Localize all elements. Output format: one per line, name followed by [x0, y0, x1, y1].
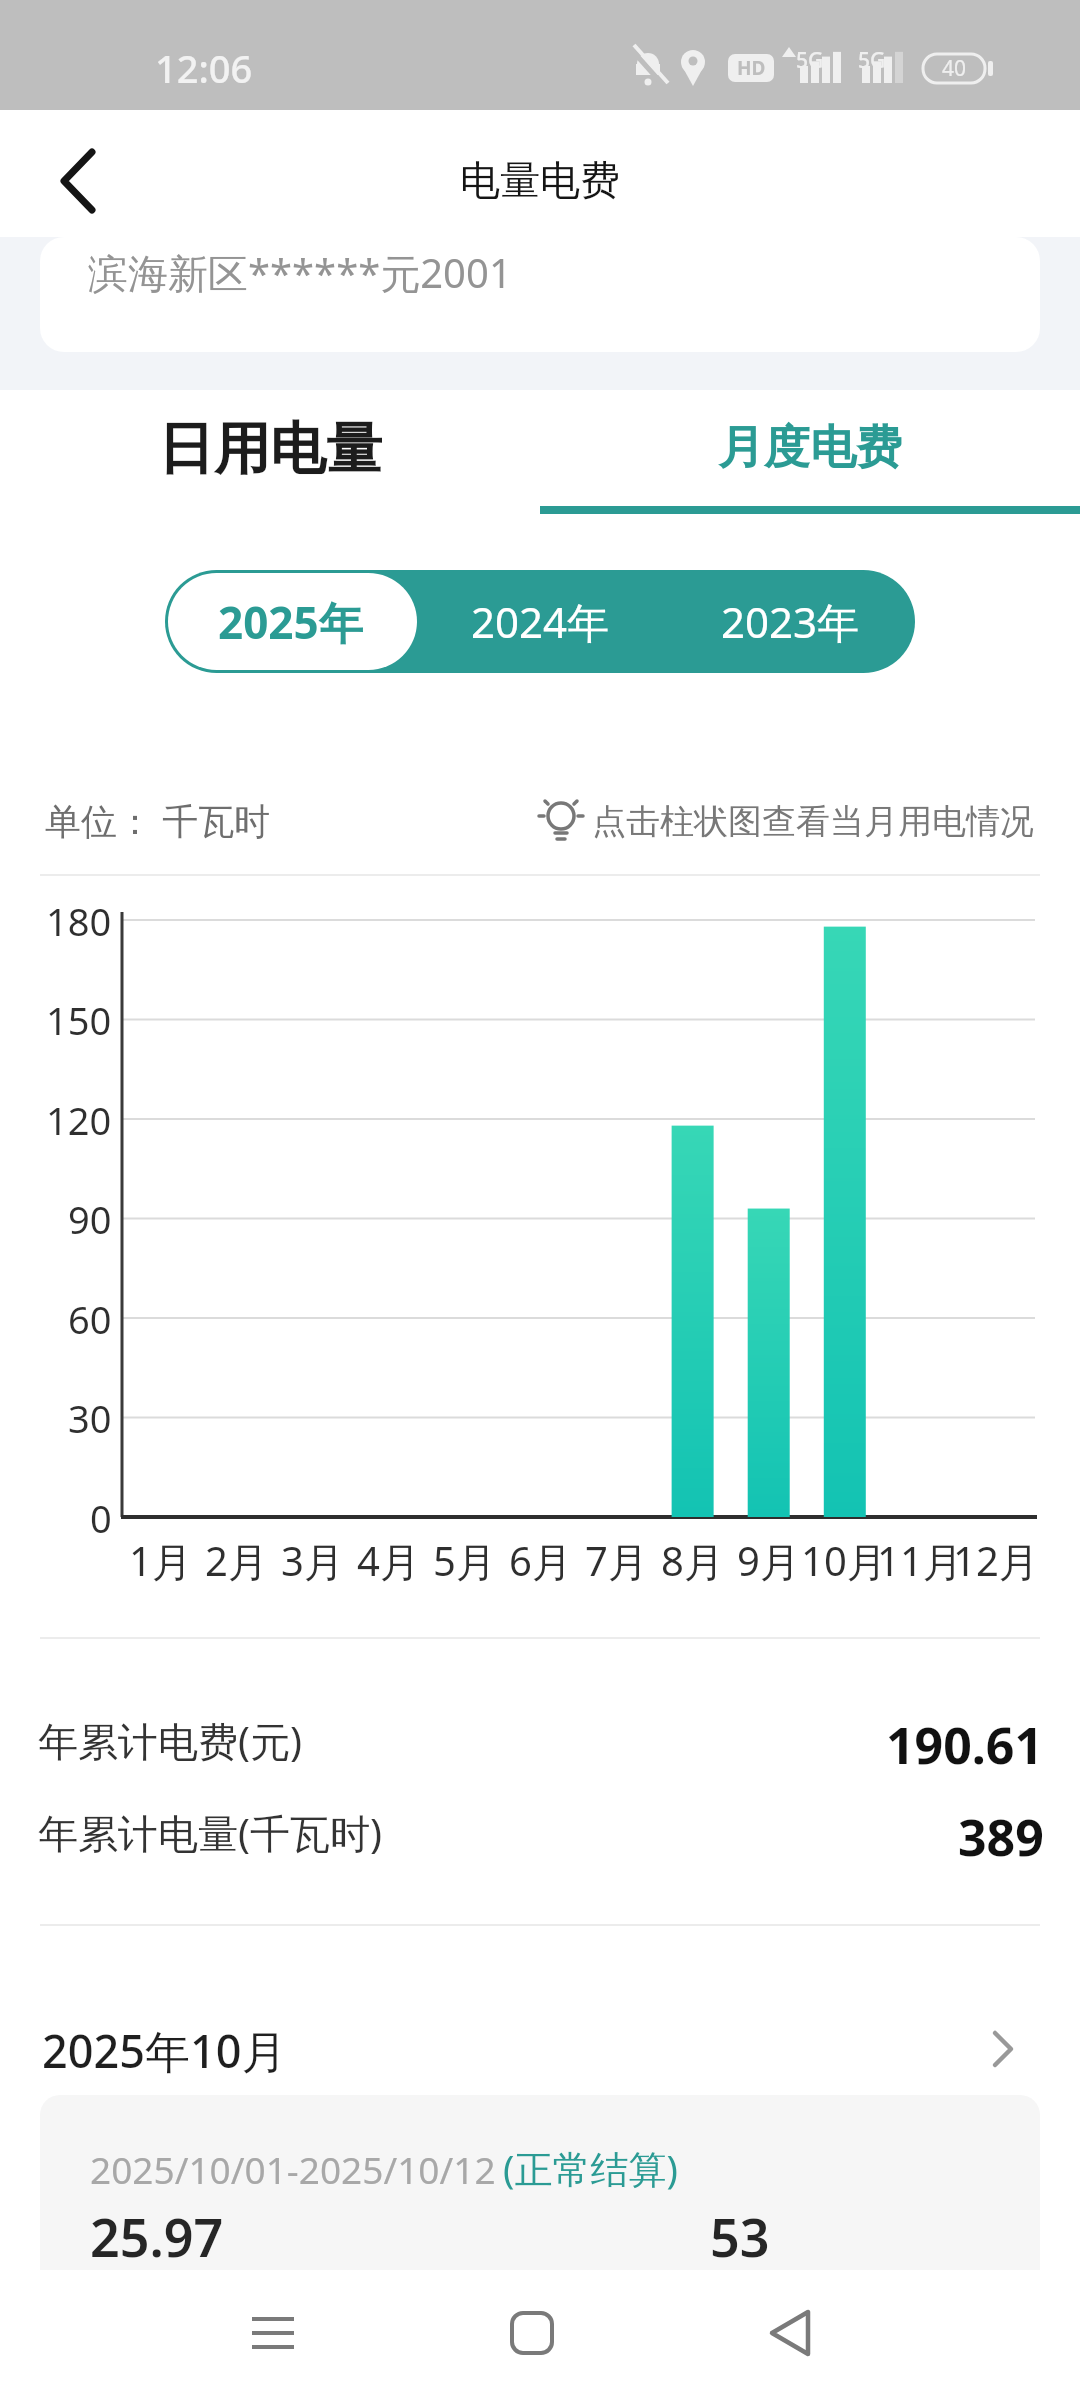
staticText: 12月	[953, 1533, 1039, 1583]
staticText: 7月	[585, 1533, 648, 1583]
staticText: 8月	[661, 1533, 724, 1583]
staticText: 2025/10/01-2025/10/12	[90, 2144, 496, 2194]
staticText: 5G	[796, 46, 824, 70]
button[interactable]: 日用电量	[0, 414, 540, 480]
button[interactable]	[490, 2291, 574, 2375]
staticText: 60	[68, 1293, 112, 1343]
staticText: 10月	[801, 1533, 887, 1583]
staticText: (正常结算)	[503, 2142, 678, 2194]
staticText: 电量电费	[460, 155, 620, 205]
staticText: 150	[46, 994, 112, 1044]
button[interactable]	[748, 2291, 832, 2375]
button[interactable]	[0, 2010, 1080, 2086]
button[interactable]	[40, 2095, 1040, 2270]
staticText: 53	[710, 2201, 770, 2261]
staticText: 2025年10月	[42, 2020, 287, 2076]
staticText: 180	[46, 895, 112, 945]
staticText: 2025年	[218, 592, 363, 652]
staticText: 12:06	[155, 42, 253, 94]
staticText: 4月	[357, 1533, 420, 1583]
button[interactable]: 2023年	[665, 570, 915, 673]
staticText: 3月	[281, 1533, 344, 1583]
staticText: 120	[46, 1094, 112, 1144]
staticText: HD	[737, 55, 766, 81]
staticText: 年累计电费(元)	[38, 1713, 302, 1767]
staticText: 90	[68, 1193, 112, 1243]
staticText: 25.97	[90, 2201, 224, 2261]
button[interactable]	[0, 890, 1080, 1590]
staticText: 日用电量	[158, 414, 382, 480]
staticText: 单位： 千瓦时	[45, 796, 271, 844]
staticText: 2024年	[471, 593, 610, 650]
staticText: 40	[942, 54, 967, 83]
staticText: 年累计电量(千瓦时)	[38, 1805, 382, 1859]
staticText: 2月	[205, 1533, 268, 1583]
staticText: 滨海新区******元2001	[88, 245, 512, 300]
staticText: 389	[958, 1803, 1044, 1861]
staticText: 1月	[129, 1533, 192, 1583]
staticText: 30	[68, 1392, 112, 1442]
staticText: 月度电费	[718, 419, 902, 477]
button[interactable]: 月度电费	[540, 418, 1080, 478]
staticText: 6月	[509, 1533, 572, 1583]
button[interactable]	[30, 140, 120, 230]
staticText: 0	[90, 1492, 112, 1542]
staticText: 190.61	[886, 1711, 1044, 1769]
staticText: 11月	[877, 1533, 963, 1583]
button[interactable]: 2025年	[165, 570, 415, 673]
staticText: 点击柱状图查看当月用电情况	[592, 800, 1034, 843]
button[interactable]	[40, 237, 1040, 352]
staticText: 5月	[433, 1533, 496, 1583]
staticText: 5G	[858, 46, 886, 70]
button[interactable]	[231, 2291, 315, 2375]
staticText: 9月	[737, 1533, 800, 1583]
staticText: 2023年	[721, 593, 860, 650]
button[interactable]: 2024年	[415, 570, 665, 673]
